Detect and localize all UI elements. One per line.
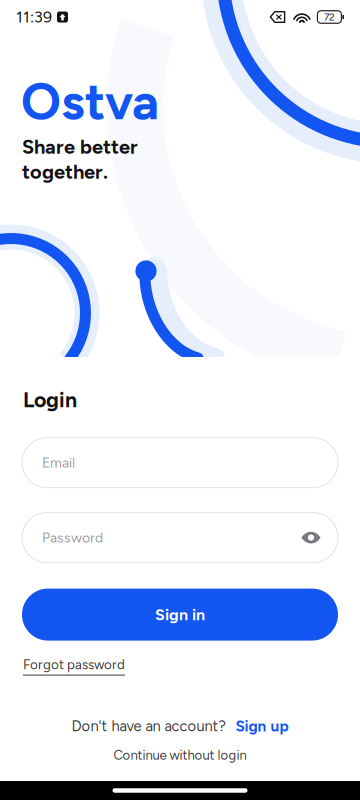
button[interactable]: Forgot password: [0, 641, 125, 676]
staticText: Forgot password: [23, 657, 125, 673]
staticText: 72: [324, 11, 335, 23]
button[interactable]: Sign in: [0, 563, 360, 641]
staticText: 11:39: [16, 7, 52, 27]
staticText: Don't have an account?: [71, 717, 225, 735]
staticText: Password: [42, 529, 103, 546]
staticText: Login: [23, 387, 77, 413]
staticText: Sign in: [155, 605, 205, 624]
button[interactable]: Show password: [292, 516, 330, 560]
staticText: Email: [42, 454, 75, 471]
staticText: together.: [22, 160, 108, 184]
staticText: Ostva: [21, 71, 159, 132]
button[interactable]: Sign up: [235, 717, 288, 735]
staticText: Continue without login: [113, 747, 246, 763]
staticText: Sign up: [235, 717, 288, 735]
staticText: Share better: [22, 135, 138, 159]
button[interactable]: Continue without login: [0, 735, 360, 763]
